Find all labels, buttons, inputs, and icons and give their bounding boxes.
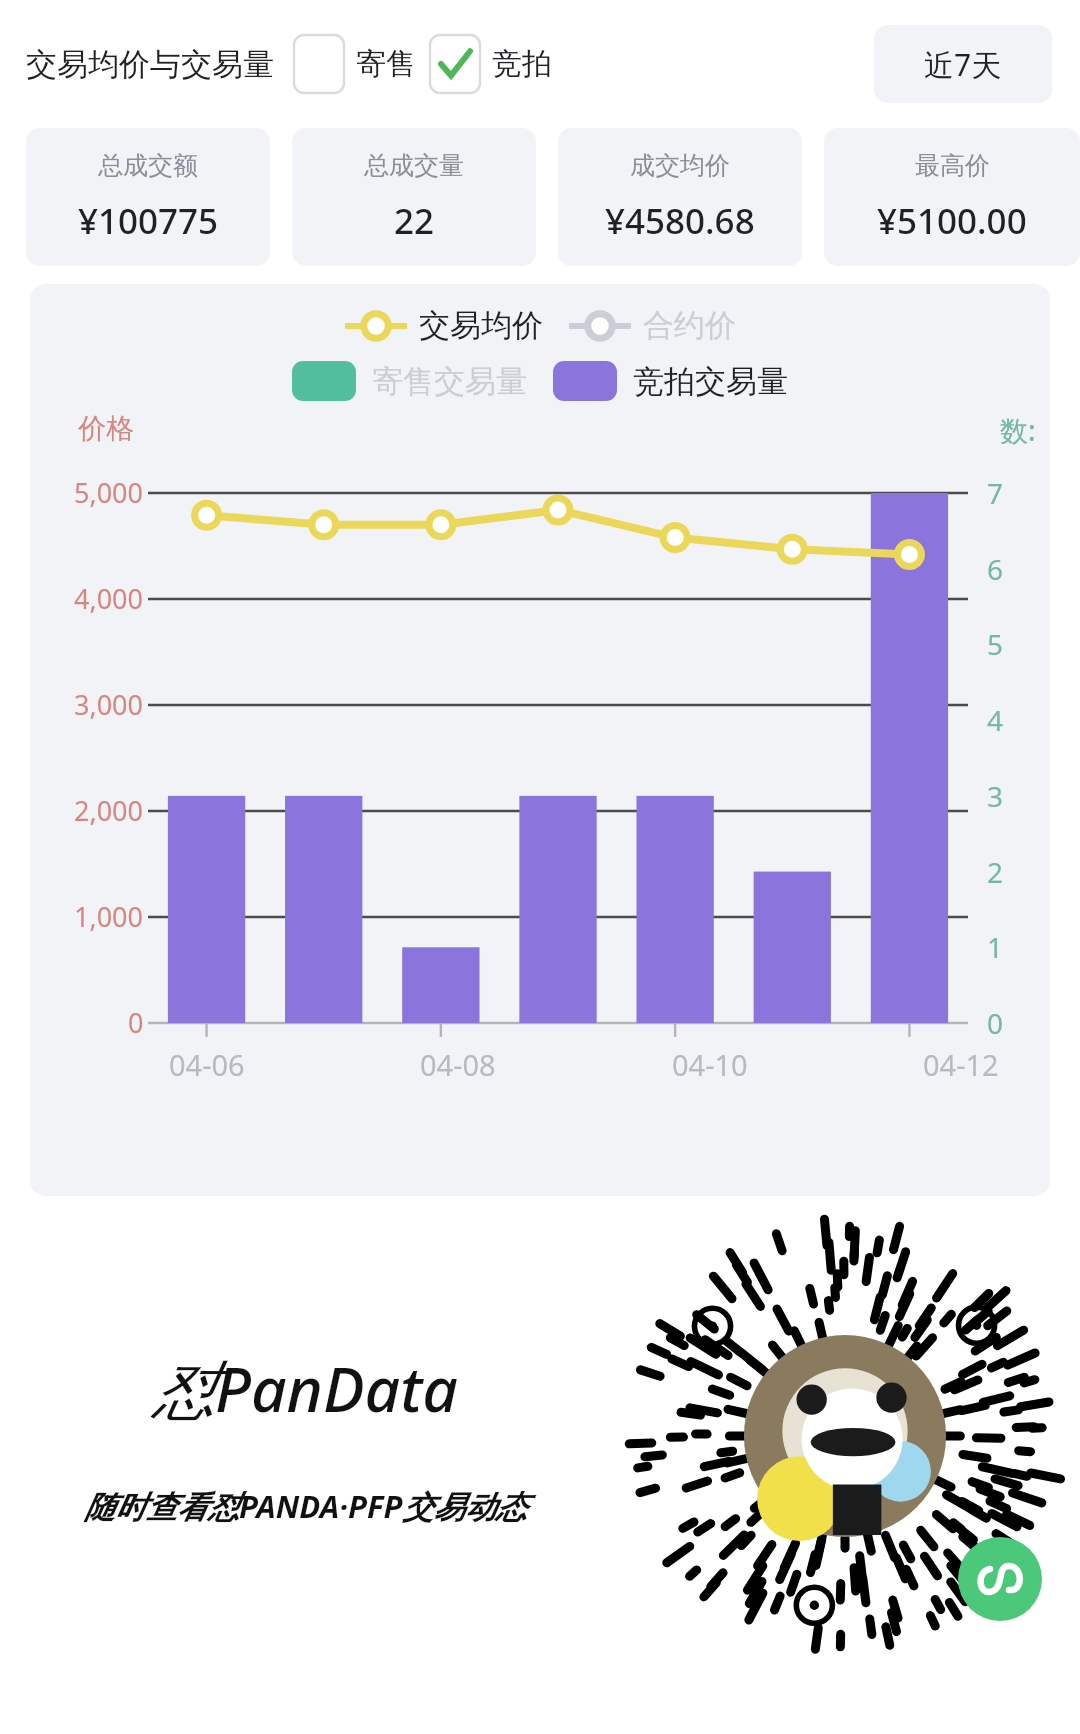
staticText: 0 xyxy=(128,1004,144,1041)
staticText: 6 xyxy=(987,550,1004,588)
staticText: 2,000 xyxy=(74,792,144,829)
staticText: 1,000 xyxy=(74,898,144,935)
staticText: 5,000 xyxy=(74,474,144,511)
button[interactable]: 近7天 xyxy=(874,25,1052,103)
staticText: 总成交额 xyxy=(98,150,198,181)
staticText: 价格 xyxy=(78,411,134,446)
staticText: 04-10 xyxy=(672,1045,748,1084)
staticText: 随时查看怼PANDA·PFP交易动态 xyxy=(84,1485,527,1527)
staticText: 0 xyxy=(987,1004,1004,1042)
staticText: 04-08 xyxy=(420,1045,496,1084)
staticText: ¥5100.00 xyxy=(877,197,1027,245)
staticText: 22 xyxy=(394,197,435,245)
staticText: ¥100775 xyxy=(78,197,219,245)
staticText: 近7天 xyxy=(924,44,1002,85)
staticText: 成交均价 xyxy=(630,150,730,181)
staticText: 4,000 xyxy=(74,580,144,617)
staticText: 竞拍交易量 xyxy=(633,362,788,401)
button[interactable]: 小程序二维码 xyxy=(610,1196,1080,1676)
button[interactable]: 总成交额 xyxy=(26,128,270,266)
staticText: ¥4580.68 xyxy=(605,197,755,245)
button[interactable]: 寄售 xyxy=(294,35,416,93)
staticText: 怼PanData xyxy=(153,1346,458,1431)
staticText: 寄售 xyxy=(356,45,416,83)
button[interactable]: 总成交量 xyxy=(292,128,536,266)
staticText: 竞拍 xyxy=(492,45,552,83)
button[interactable]: 最高价 xyxy=(824,128,1080,266)
staticText: 总成交量 xyxy=(364,150,464,181)
staticText: 交易均价 xyxy=(419,306,543,345)
staticText: 合约价 xyxy=(643,306,736,345)
staticText: 04-06 xyxy=(169,1045,245,1084)
staticText: 寄售交易量 xyxy=(372,362,527,401)
staticText: 数: xyxy=(1000,411,1036,449)
staticText: 1 xyxy=(987,928,1004,966)
staticText: 7 xyxy=(987,474,1004,512)
staticText: 5 xyxy=(987,625,1004,663)
staticText: 最高价 xyxy=(915,150,990,181)
button[interactable]: 竞拍 xyxy=(430,35,552,93)
staticText: 3 xyxy=(987,777,1004,815)
button[interactable]: 成交均价 xyxy=(558,128,802,266)
staticText: 3,000 xyxy=(74,686,144,723)
staticText: 04-12 xyxy=(923,1045,999,1084)
staticText: 4 xyxy=(987,701,1004,739)
staticText: 2 xyxy=(987,853,1004,891)
staticText: 交易均价与交易量 xyxy=(26,45,274,84)
